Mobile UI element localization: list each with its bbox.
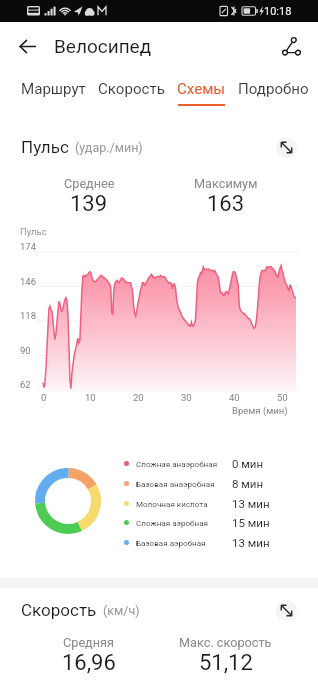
button[interactable]: Маршрут (15, 70, 92, 116)
staticText: 90 (20, 345, 31, 356)
staticText: 15 мин (232, 516, 270, 529)
staticText: Базовая аэробная (136, 538, 206, 547)
button[interactable]: Share (277, 32, 305, 60)
staticText: (удар./мин) (75, 140, 143, 155)
staticText: 20 (133, 392, 144, 403)
staticText: 51,12 (199, 650, 253, 676)
button[interactable]: Подробно (232, 70, 315, 116)
staticText: 30 (181, 392, 192, 403)
staticText: 50 (277, 392, 288, 403)
staticText: Сложная анаэробная (136, 459, 218, 468)
staticText: 13 мин (232, 536, 270, 549)
staticText: Базовая анаэробная (136, 479, 215, 488)
staticText: 13 мин (232, 497, 270, 510)
button[interactable]: Скорость (92, 70, 171, 116)
staticText: 10:18 (264, 5, 292, 18)
staticText: (км/ч) (103, 603, 140, 618)
button[interactable]: Expand (276, 137, 297, 158)
staticText: 146 (20, 276, 37, 287)
staticText: 174 (20, 241, 37, 252)
staticText: Скорость (21, 600, 97, 620)
staticText: Пульс (21, 137, 69, 157)
staticText: Схемы (177, 80, 226, 98)
staticText: 62 (20, 379, 31, 390)
staticText: 40 (229, 392, 240, 403)
staticText: 118 (20, 310, 37, 321)
staticText: Маршрут (21, 80, 86, 98)
staticText: Среднее (64, 176, 115, 191)
staticText: 0 (41, 392, 47, 403)
staticText: Подробно (238, 80, 309, 98)
staticText: 0 мин (232, 457, 264, 470)
button[interactable]: Expand (276, 600, 297, 621)
staticText: Максимум (194, 176, 258, 191)
staticText: 8 мин (232, 477, 264, 490)
staticText: Пульс (20, 226, 47, 237)
staticText: Велосипед (54, 35, 152, 57)
staticText: Молочная кислота (136, 499, 208, 508)
button[interactable]: Схемы (171, 70, 232, 116)
staticText: Макс. скорость (179, 635, 272, 650)
staticText: 139 (70, 191, 108, 217)
staticText: Скорость (98, 80, 165, 98)
button[interactable]: Back (13, 32, 41, 60)
staticText: 163 (207, 191, 245, 217)
staticText: Время (мин) (232, 405, 288, 416)
staticText: 10 (85, 392, 96, 403)
staticText: Сложная аэробная (136, 518, 209, 527)
staticText: 16,96 (62, 650, 116, 676)
staticText: Средняя (63, 635, 115, 650)
